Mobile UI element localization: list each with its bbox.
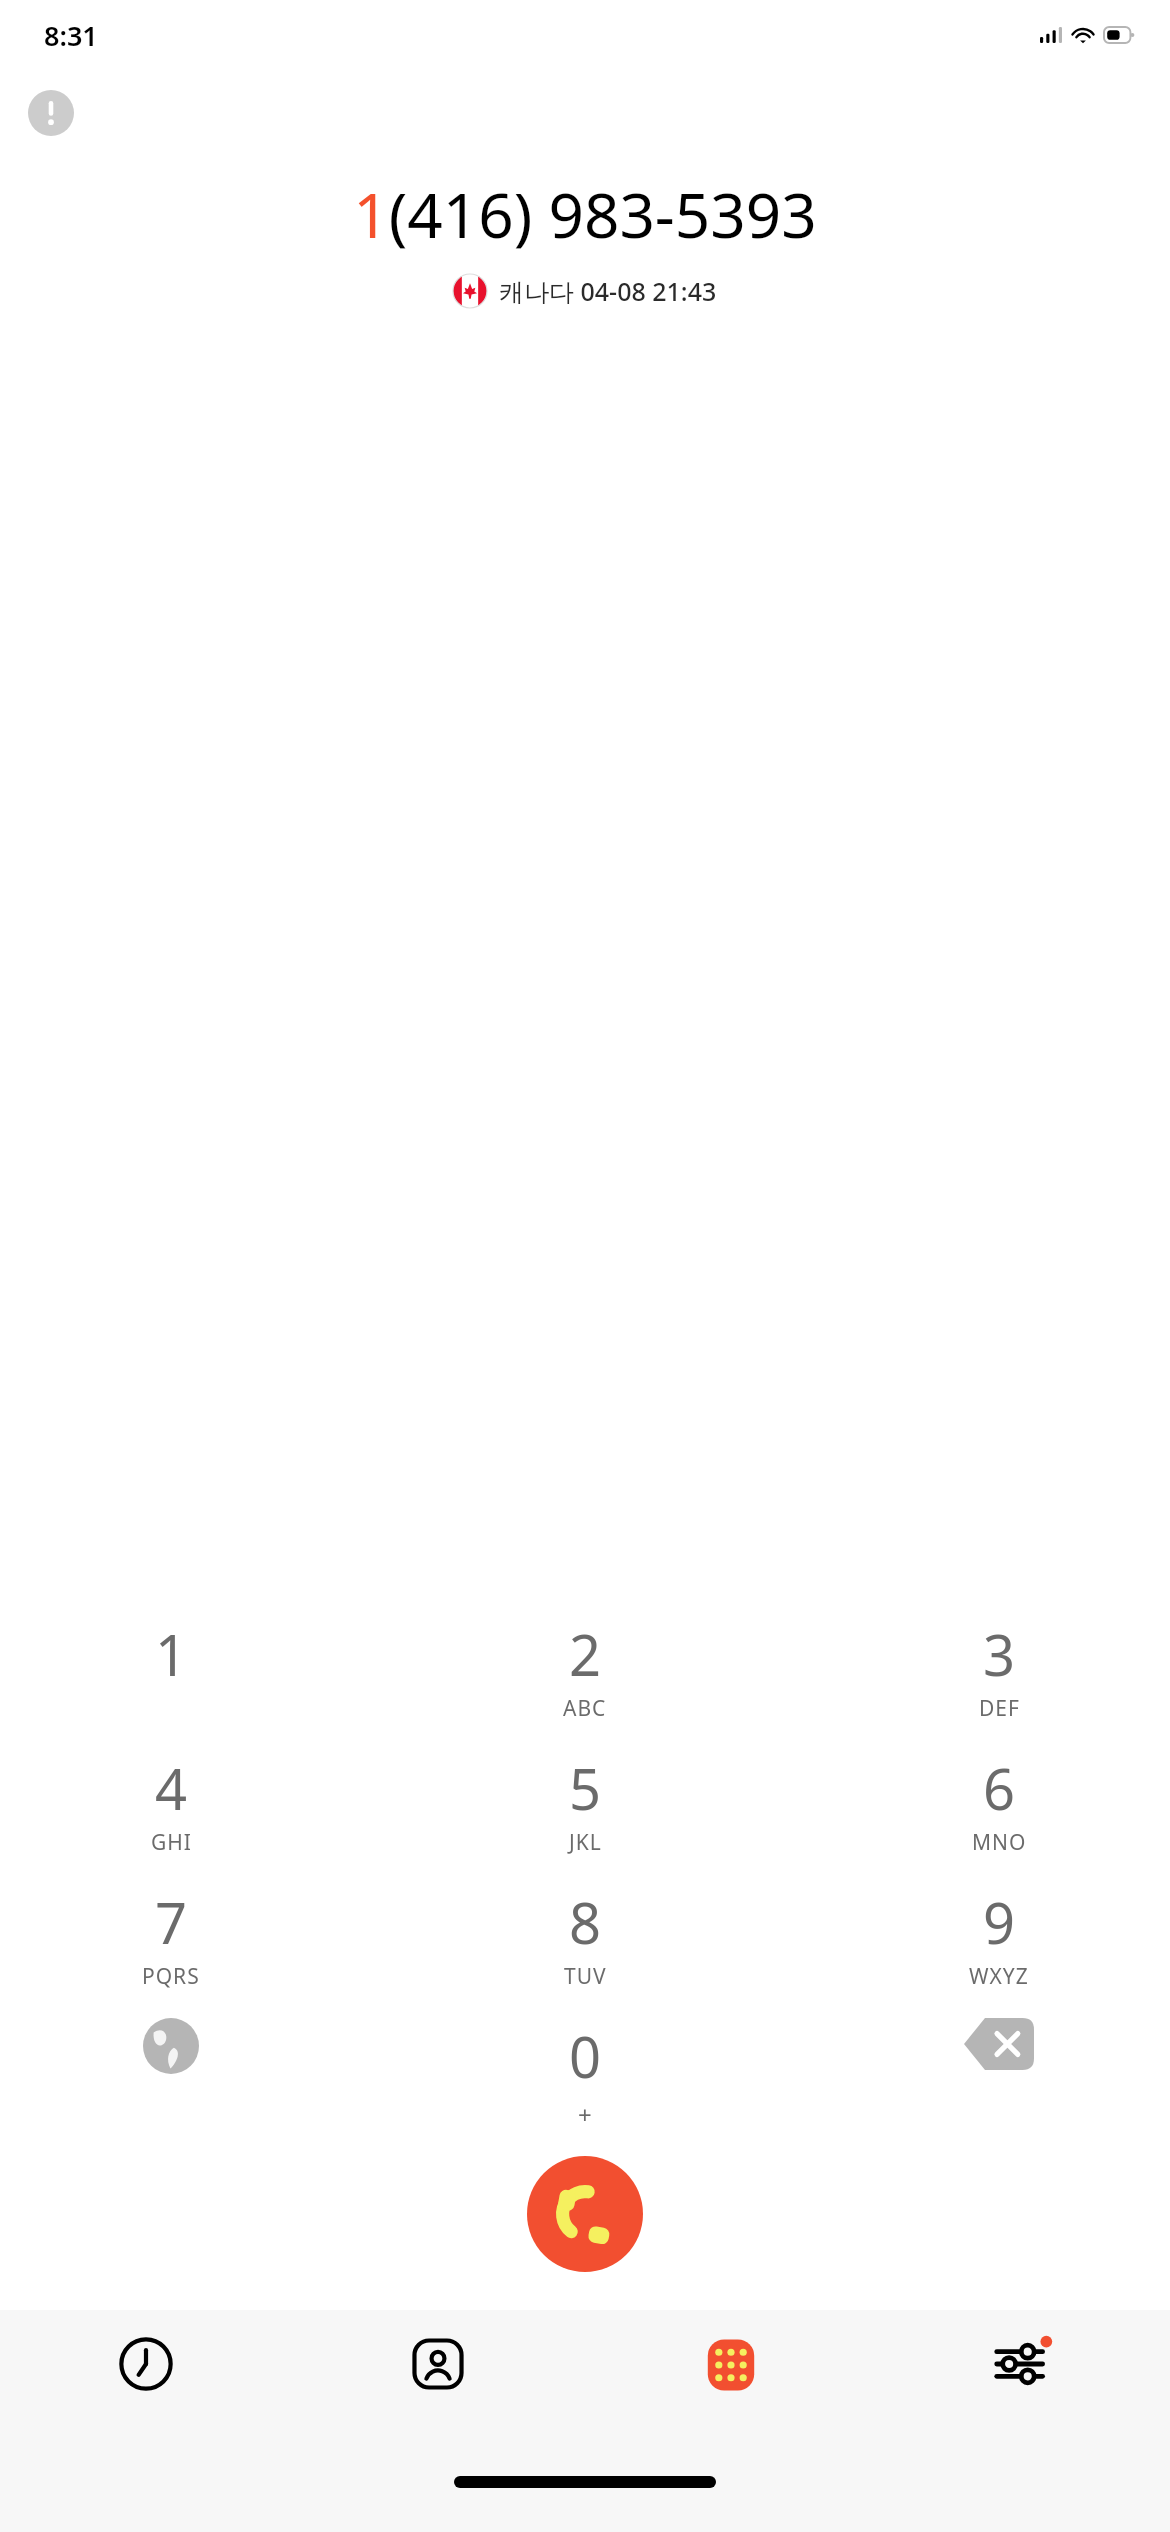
button[interactable]: Call [527,2156,643,2272]
button[interactable]: 8 [480,1884,690,2000]
staticText: WXYZ [969,1962,1029,1991]
staticText: 4 [155,1750,188,1826]
button[interactable]: 6 [894,1750,1104,1866]
staticText: 6 [983,1750,1016,1826]
button[interactable]: 0 [480,2018,690,2134]
button[interactable]: 3 [894,1616,1104,1732]
staticText: TUV [564,1962,607,1991]
button[interactable]: 9 [894,1884,1104,2000]
staticText: + [578,2098,593,2131]
button[interactable]: Information [28,90,74,136]
button[interactable]: International [66,2018,276,2134]
button[interactable]: Recents [0,2310,292,2476]
button[interactable]: 5 [480,1750,690,1866]
staticText: 1(416) 983-5393 [353,172,817,256]
staticText: 캐나다 04-08 21:43 [499,274,717,308]
button[interactable]: Settings [877,2310,1170,2476]
staticText: GHI [151,1828,192,1857]
staticText: 8 [569,1884,602,1960]
staticText: 1 [155,1616,188,1692]
staticText: JKL [569,1828,602,1857]
staticText: 0 [569,2018,602,2094]
button[interactable]: Contacts [292,2310,584,2476]
staticText: ABC [563,1694,607,1723]
button[interactable]: 2 [480,1616,690,1732]
staticText: 3 [983,1616,1016,1692]
button[interactable]: 7 [66,1884,276,2000]
staticText: DEF [979,1694,1020,1723]
button[interactable]: Delete [894,2018,1104,2134]
staticText: 9 [983,1884,1016,1960]
button[interactable]: 1 [66,1616,276,1732]
button[interactable]: Keypad [584,2310,877,2476]
staticText: PQRS [142,1962,200,1991]
staticText: MNO [972,1828,1027,1857]
staticText: 7 [155,1884,188,1960]
staticText: 5 [569,1750,602,1826]
staticText: 8:31 [44,17,98,54]
staticText: 2 [569,1616,602,1692]
button[interactable]: 4 [66,1750,276,1866]
